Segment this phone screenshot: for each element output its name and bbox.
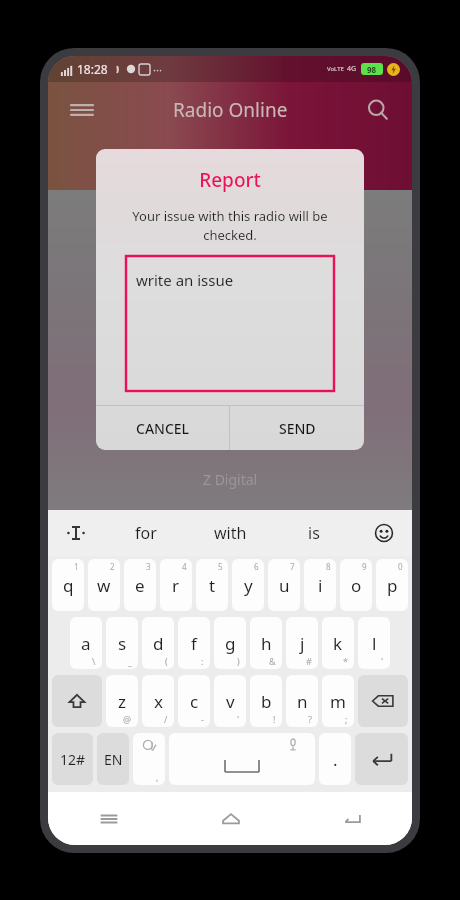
- button[interactable]: ': [358, 617, 390, 669]
- staticText: s: [118, 632, 127, 655]
- staticText: for: [135, 522, 157, 544]
- staticText: w: [97, 574, 111, 597]
- staticText: q: [63, 574, 74, 597]
- button[interactable]: 1: [52, 559, 84, 611]
- button[interactable]: :: [178, 617, 210, 669]
- button[interactable]: for: [104, 510, 188, 556]
- button[interactable]: recents: [48, 792, 170, 845]
- staticText: 6: [254, 561, 259, 572]
- button[interactable]: Search: [358, 90, 398, 130]
- staticText: c: [190, 690, 199, 713]
- staticText: Report: [96, 167, 364, 193]
- button[interactable]: 7: [268, 559, 300, 611]
- button[interactable]: EN: [97, 733, 129, 785]
- staticText: ): [237, 655, 240, 667]
- staticText: Radio Online: [173, 97, 288, 123]
- button[interactable]: .: [319, 733, 351, 785]
- staticText: o: [351, 574, 362, 597]
- button[interactable]: /: [142, 675, 174, 727]
- button[interactable]: 4: [160, 559, 192, 611]
- staticText: h: [261, 632, 272, 655]
- staticText: write an issue: [136, 270, 234, 290]
- button[interactable]: enter: [355, 733, 408, 785]
- button[interactable]: write an issue: [126, 256, 334, 391]
- button[interactable]: ;: [322, 675, 354, 727]
- button[interactable]: 3: [124, 559, 156, 611]
- button[interactable]: 8: [304, 559, 336, 611]
- staticText: -: [201, 713, 204, 725]
- staticText: 5: [218, 561, 223, 572]
- button[interactable]: Menu: [62, 90, 102, 130]
- staticText: VoLTE: [327, 65, 344, 73]
- button[interactable]: #: [286, 617, 318, 669]
- staticText: Your issue with this radio will be check…: [122, 207, 338, 244]
- button[interactable]: @: [106, 675, 138, 727]
- staticText: f: [191, 632, 197, 655]
- button[interactable]: shift: [52, 675, 102, 727]
- staticText: _: [128, 655, 132, 667]
- staticText: l: [372, 632, 377, 655]
- button[interactable]: ': [214, 675, 246, 727]
- button[interactable]: with: [188, 510, 272, 556]
- staticText: :: [201, 655, 204, 667]
- button[interactable]: Emoji: [356, 510, 412, 556]
- button[interactable]: ?: [286, 675, 318, 727]
- button[interactable]: 5: [196, 559, 228, 611]
- button[interactable]: CANCEL: [96, 406, 229, 450]
- staticText: 0: [398, 561, 403, 572]
- staticText: ?: [308, 713, 312, 725]
- button[interactable]: 6: [232, 559, 264, 611]
- staticText: y: [244, 574, 253, 597]
- staticText: Z Digital: [203, 470, 258, 489]
- staticText: r: [172, 574, 180, 597]
- button[interactable]: _: [106, 617, 138, 669]
- staticText: with: [214, 522, 247, 544]
- button[interactable]: \: [70, 617, 102, 669]
- staticText: t: [209, 574, 216, 597]
- staticText: m: [330, 690, 346, 713]
- button[interactable]: space: [169, 733, 315, 785]
- staticText: 1: [74, 561, 79, 572]
- staticText: 3: [146, 561, 151, 572]
- staticText: z: [118, 690, 126, 713]
- staticText: g: [225, 632, 236, 655]
- button[interactable]: 0: [376, 559, 408, 611]
- staticText: p: [387, 574, 398, 597]
- button[interactable]: 2: [88, 559, 120, 611]
- button[interactable]: -: [178, 675, 210, 727]
- staticText: \: [92, 655, 96, 667]
- button[interactable]: SEND: [230, 406, 364, 450]
- button[interactable]: back: [291, 792, 412, 845]
- staticText: &: [269, 655, 276, 667]
- button[interactable]: is: [272, 510, 356, 556]
- staticText: d: [153, 632, 164, 655]
- staticText: j: [300, 632, 305, 655]
- button[interactable]: 12#: [52, 733, 93, 785]
- staticText: 4: [182, 561, 187, 572]
- button[interactable]: !: [250, 675, 282, 727]
- staticText: EN: [104, 750, 123, 769]
- staticText: ;: [345, 713, 348, 725]
- button[interactable]: acheck: [133, 733, 165, 785]
- button[interactable]: 9: [340, 559, 372, 611]
- button[interactable]: (: [142, 617, 174, 669]
- staticText: !: [273, 713, 276, 725]
- staticText: ,: [156, 771, 159, 783]
- staticText: ': [381, 655, 384, 667]
- staticText: 12#: [60, 750, 86, 769]
- staticText: 4G: [347, 64, 357, 74]
- staticText: ···: [153, 62, 162, 77]
- button[interactable]: &: [250, 617, 282, 669]
- staticText: v: [226, 690, 235, 713]
- button[interactable]: Text cursor: [48, 510, 104, 556]
- staticText: a: [81, 632, 91, 655]
- staticText: *: [343, 655, 348, 667]
- button[interactable]: home: [170, 792, 291, 845]
- button[interactable]: back: [358, 675, 408, 727]
- staticText: k: [333, 632, 343, 655]
- staticText: e: [135, 574, 145, 597]
- button[interactable]: ): [214, 617, 246, 669]
- staticText: CANCEL: [136, 419, 190, 438]
- staticText: 8: [326, 561, 331, 572]
- button[interactable]: *: [322, 617, 354, 669]
